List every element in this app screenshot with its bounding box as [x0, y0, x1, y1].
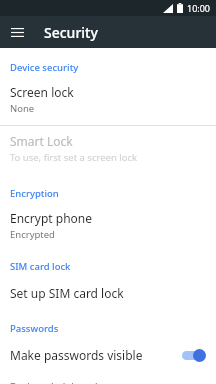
button[interactable]: Make passwords visible: [0, 338, 216, 372]
staticText: Smart Lock: [10, 133, 73, 149]
staticText: Screen lock: [10, 84, 74, 100]
staticText: 10:00: [187, 2, 211, 14]
button[interactable]: Smart Lock: [0, 126, 216, 171]
staticText: Set up SIM card lock: [10, 285, 124, 301]
button[interactable]: Screen lock: [0, 77, 216, 122]
staticText: SIM card lock: [10, 260, 71, 273]
button[interactable]: Encrypt phone: [0, 203, 216, 248]
staticText: Encrypt phone: [10, 210, 92, 226]
staticText: None: [10, 102, 35, 115]
staticText: Passwords: [10, 322, 59, 335]
staticText: Device administration: [10, 380, 110, 384]
staticText: Security: [44, 23, 98, 42]
staticText: To use, first set a screen lock: [10, 151, 138, 164]
staticText: Encryption: [10, 187, 59, 200]
button[interactable]: Set up SIM card lock: [0, 276, 216, 310]
staticText: Device security: [10, 61, 79, 74]
staticText: Make passwords visible: [10, 347, 180, 363]
staticText: Encrypted: [10, 228, 55, 241]
button[interactable]: Open navigation menu: [6, 21, 28, 43]
